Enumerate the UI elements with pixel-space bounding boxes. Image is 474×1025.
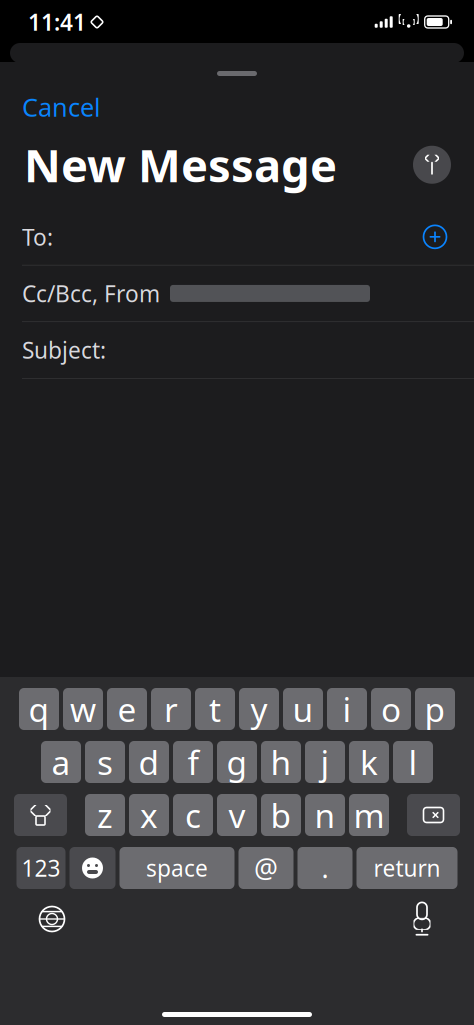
staticText: . [321,850,328,886]
staticText: v [228,793,245,837]
button[interactable]: Shift [14,794,67,836]
staticText: Cancel [22,90,101,124]
staticText: 123 [21,853,60,883]
button[interactable]: Next keyboard [30,897,74,941]
button[interactable]: z [85,794,125,836]
button[interactable]: 123 [16,847,65,889]
staticText: c [185,793,201,837]
staticText: l [408,740,417,784]
button[interactable]: m [349,794,389,836]
button[interactable]: o [371,688,411,730]
staticText: p [424,687,445,731]
staticText: To: [22,222,53,252]
staticText: q [28,687,49,731]
staticText: return [373,853,440,883]
button[interactable]: @ [238,847,293,889]
button[interactable]: l [393,741,433,783]
staticText: h [270,740,291,784]
staticText: d [138,740,159,784]
button[interactable]: v [217,794,257,836]
staticText: a [51,740,70,784]
button[interactable]: r [151,688,191,730]
staticText: @ [254,850,278,886]
button[interactable]: Cancel [0,83,123,131]
button[interactable]: y [239,688,279,730]
button[interactable]: w [63,688,103,730]
staticText: b [270,793,291,837]
staticText: 11:41 [28,7,86,37]
staticText: g [226,740,247,784]
button[interactable]: i [327,688,367,730]
button[interactable]: n [305,794,345,836]
button[interactable]: x [129,794,169,836]
staticText: j [320,740,329,784]
button[interactable]: b [261,794,301,836]
button[interactable]: u [283,688,323,730]
button[interactable]: e [107,688,147,730]
staticText: e [117,687,136,731]
button[interactable]: return [356,847,457,889]
staticText: k [360,740,378,784]
staticText: space [146,853,208,883]
staticText: m [353,793,384,837]
staticText: n [314,793,335,837]
button[interactable]: Delete [407,794,460,836]
staticText: o [381,687,401,731]
staticText: u [292,687,313,731]
button[interactable]: k [349,741,389,783]
button[interactable]: f [173,741,213,783]
staticText: Subject: [22,335,106,365]
button[interactable]: q [19,688,59,730]
button[interactable]: s [85,741,125,783]
button[interactable]: space [119,847,234,889]
staticText: i [342,687,351,731]
staticText: z [97,793,113,837]
staticText: r [164,687,178,731]
staticText: y [250,687,267,731]
button[interactable]: Dictation [400,897,444,941]
button[interactable]: p [415,688,455,730]
staticText: x [140,793,158,837]
staticText: w [70,687,96,731]
staticText: Cc/Bcc, From [22,278,160,308]
staticText: f [187,740,198,784]
button[interactable]: d [129,741,169,783]
staticText: s [97,740,113,784]
button[interactable]: j [305,741,345,783]
button[interactable]: Add contact [418,220,452,254]
button[interactable]: Emoji [69,847,115,889]
button[interactable]: Send [408,141,456,189]
staticText: t [209,687,221,731]
button[interactable]: g [217,741,257,783]
button[interactable]: a [41,741,81,783]
staticText: New Message [24,135,337,195]
button[interactable]: c [173,794,213,836]
button[interactable]: t [195,688,235,730]
button[interactable]: h [261,741,301,783]
button[interactable]: . [297,847,352,889]
